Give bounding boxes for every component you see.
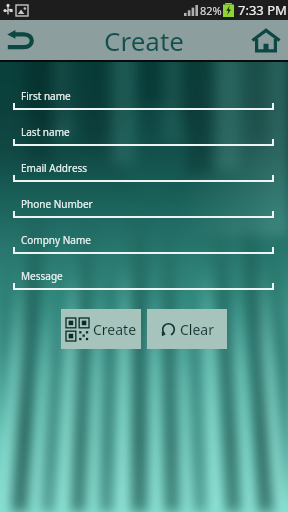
button[interactable]: Compny Name [13,228,274,264]
button[interactable]: Phone Number [13,192,274,228]
staticText: Create [93,320,137,339]
staticText: Last name [21,125,70,139]
button[interactable]: First name [13,84,274,120]
button[interactable]: Message [13,264,274,300]
staticText: 82% [200,3,222,18]
button[interactable]: Email Address [13,156,274,192]
staticText: 7:33 PM [238,1,287,19]
button[interactable]: Last name [13,120,274,156]
button[interactable]: Clear [147,309,227,349]
staticText: Email Address [21,161,88,175]
button[interactable]: Back [4,23,38,57]
button[interactable]: Home [249,23,283,57]
staticText: Create [104,23,184,58]
staticText: First name [21,89,71,103]
staticText: Clear [180,320,214,339]
staticText: Message [21,269,63,283]
staticText: Compny Name [21,233,91,247]
staticText: Phone Number [21,197,93,211]
button[interactable]: Create [61,309,141,349]
